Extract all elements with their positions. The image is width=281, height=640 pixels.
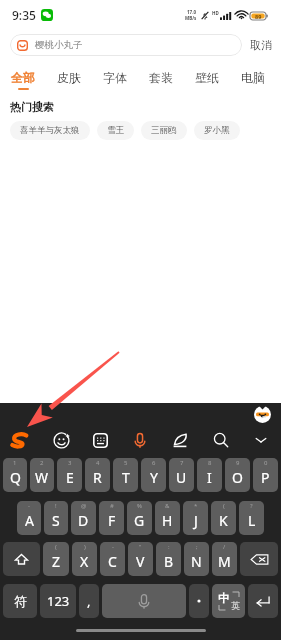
- staticText: (: [223, 502, 225, 510]
- button[interactable]: 3: [57, 458, 82, 492]
- button[interactable]: 9: [225, 458, 250, 492]
- button[interactable]: 罗小黑: [194, 121, 240, 140]
- staticText: N: [191, 552, 202, 571]
- staticText: 6: [152, 459, 156, 467]
- staticText: MB/s: [185, 15, 197, 21]
- staticText: /: [223, 543, 226, 551]
- button[interactable]: (: [211, 501, 236, 535]
- staticText: 壁纸: [195, 70, 219, 85]
- button[interactable]: Switch Chinese English: [212, 584, 245, 618]
- staticText: U: [176, 468, 187, 487]
- button[interactable]: 0: [253, 458, 278, 492]
- staticText: I: [207, 468, 212, 487]
- staticText: F: [108, 511, 116, 530]
- staticText: 英: [231, 600, 240, 611]
- button[interactable]: @: [71, 501, 96, 535]
- staticText: D: [78, 511, 89, 530]
- button[interactable]: 字体: [92, 66, 138, 85]
- staticText: 套装: [149, 70, 173, 85]
- button[interactable]: -: [17, 501, 41, 535]
- button[interactable]: !: [44, 501, 68, 535]
- button[interactable]: Keyboard layout: [86, 426, 114, 454]
- button[interactable]: ,: [79, 584, 99, 618]
- button[interactable]: 取消: [247, 36, 275, 54]
- button[interactable]: ;: [184, 542, 209, 576]
- button[interactable]: 8: [197, 458, 222, 492]
- button[interactable]: Voice input: [126, 426, 154, 454]
- staticText: *: [194, 502, 198, 510]
- staticText: 樱桃小丸子: [35, 39, 83, 51]
- button[interactable]: Handwriting: [166, 426, 194, 454]
- button[interactable]: 6: [141, 458, 166, 492]
- staticText: O: [232, 468, 243, 487]
- button[interactable]: 5: [113, 458, 138, 492]
- button[interactable]: (: [43, 542, 69, 576]
- button[interactable]: 三丽鸥: [141, 121, 187, 140]
- staticText: T: [122, 468, 130, 487]
- staticText: 7: [180, 459, 184, 467]
- button[interactable]: Emoji: [47, 426, 75, 454]
- button[interactable]: Sogou input method: [5, 426, 33, 454]
- button[interactable]: 皮肤: [46, 66, 92, 85]
- staticText: 9:35: [12, 7, 36, 23]
- button[interactable]: 2: [30, 458, 54, 492]
- button[interactable]: &: [155, 501, 180, 535]
- button[interactable]: 喜羊羊与灰太狼: [10, 121, 90, 140]
- staticText: ): [84, 543, 86, 551]
- button[interactable]: Period: [189, 584, 209, 618]
- staticText: HD: [212, 10, 219, 16]
- button[interactable]: Search: [207, 426, 235, 454]
- button[interactable]: 符: [3, 584, 37, 618]
- staticText: %: [137, 502, 142, 510]
- button[interactable]: *: [183, 501, 208, 535]
- staticText: J: [194, 511, 198, 530]
- staticText: 电脑端皮肤: [241, 70, 270, 85]
- staticText: 三丽鸥: [151, 125, 177, 136]
- staticText: H: [162, 511, 173, 530]
- staticText: 2: [40, 459, 44, 467]
- button[interactable]: Collapse keyboard: [247, 426, 275, 454]
- button[interactable]: 套装: [138, 66, 184, 85]
- button[interactable]: Shift: [3, 542, 40, 576]
- button[interactable]: ": [128, 542, 153, 576]
- button[interactable]: 4: [85, 458, 110, 492]
- button[interactable]: 1: [3, 458, 27, 492]
- staticText: ?: [250, 502, 253, 510]
- staticText: (: [55, 543, 57, 551]
- staticText: 5: [124, 459, 128, 467]
- button[interactable]: :: [156, 542, 181, 576]
- button[interactable]: #: [99, 501, 124, 535]
- button[interactable]: ?: [239, 501, 264, 535]
- staticText: 9: [236, 459, 240, 467]
- button[interactable]: 雪王: [97, 121, 134, 140]
- staticText: 3: [68, 459, 72, 467]
- staticText: P: [261, 468, 270, 487]
- staticText: 热门搜索: [10, 100, 54, 114]
- staticText: #: [110, 502, 114, 510]
- staticText: C: [108, 552, 117, 571]
- button[interactable]: 樱桃小丸子: [10, 34, 242, 56]
- button[interactable]: 电脑端皮肤: [230, 66, 281, 85]
- button[interactable]: Space: [102, 584, 186, 618]
- staticText: 全部: [11, 70, 35, 85]
- button[interactable]: 全部: [0, 66, 46, 90]
- staticText: 4: [96, 459, 100, 467]
- staticText: R: [93, 468, 102, 487]
- staticText: X: [80, 552, 89, 571]
- button[interactable]: ): [72, 542, 97, 576]
- button[interactable]: Backspace: [240, 542, 278, 576]
- staticText: !: [55, 502, 57, 510]
- button[interactable]: 壁纸: [184, 66, 230, 85]
- button[interactable]: 7: [169, 458, 194, 492]
- staticText: 取消: [250, 38, 272, 52]
- button[interactable]: -: [100, 542, 125, 576]
- staticText: @: [81, 502, 87, 510]
- button[interactable]: 123: [40, 584, 76, 618]
- staticText: A: [25, 511, 34, 530]
- button[interactable]: Enter: [248, 584, 278, 618]
- staticText: 89: [255, 13, 262, 20]
- button[interactable]: /: [212, 542, 237, 576]
- staticText: Q: [10, 468, 21, 487]
- staticText: 0: [264, 459, 268, 467]
- button[interactable]: %: [127, 501, 152, 535]
